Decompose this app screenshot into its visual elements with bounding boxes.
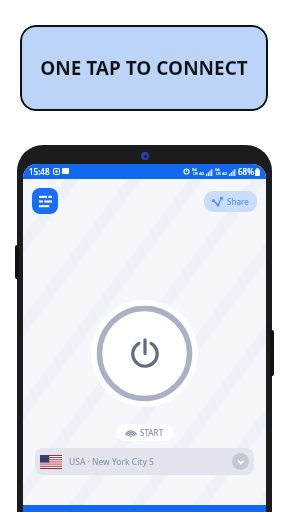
staticText: USA · New York City 5 bbox=[69, 456, 154, 468]
button[interactable]: ONE TAP TO CONNECT bbox=[20, 25, 268, 111]
button[interactable]: USA · New York City 5 bbox=[35, 448, 254, 475]
staticText: Share bbox=[227, 196, 249, 207]
button[interactable]: Menu bbox=[32, 188, 58, 214]
staticText: 4G bbox=[222, 171, 228, 176]
staticText: START bbox=[140, 427, 164, 438]
staticText: VoL bbox=[215, 168, 221, 172]
button[interactable]: START bbox=[116, 424, 174, 441]
staticText: ONE TAP TO CONNECT bbox=[40, 55, 248, 81]
staticText: VoL bbox=[192, 168, 198, 172]
staticText: LTE bbox=[216, 172, 221, 176]
button[interactable]: Connect bbox=[91, 300, 198, 407]
staticText: 4G bbox=[199, 171, 205, 176]
button[interactable]: Share bbox=[204, 191, 257, 212]
staticText: 68% bbox=[238, 166, 254, 177]
staticText: LTE bbox=[193, 172, 198, 176]
staticText: 15:48 bbox=[29, 166, 50, 177]
